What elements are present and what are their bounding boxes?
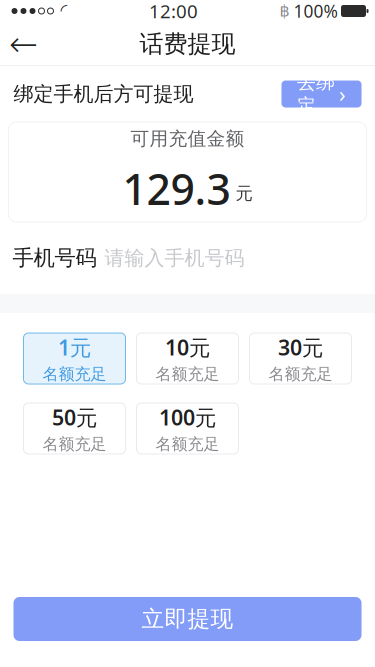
- staticText: 手机号码: [12, 245, 96, 271]
- staticText: 50元: [52, 403, 97, 431]
- staticText: 话费提现: [139, 29, 235, 59]
- button[interactable]: Back: [0, 22, 47, 66]
- staticText: ◜: [60, 0, 67, 20]
- staticText: 名额充足: [155, 434, 219, 454]
- staticText: 绑定手机后方可提现: [13, 82, 193, 106]
- staticText: 可用充值金额: [130, 127, 244, 150]
- button[interactable]: 10元: [136, 333, 238, 384]
- button[interactable]: 立即提现: [13, 597, 361, 641]
- staticText: 100元: [159, 403, 216, 431]
- staticText: 129.3: [122, 160, 230, 217]
- staticText: ฿: [279, 2, 289, 20]
- staticText: 名额充足: [268, 364, 332, 384]
- button[interactable]: 请输入手机号码: [104, 234, 362, 282]
- staticText: 立即提现: [141, 605, 233, 633]
- staticText: ›: [339, 80, 346, 108]
- staticText: 1元: [58, 333, 91, 361]
- button[interactable]: 30元: [249, 333, 351, 384]
- staticText: 名额充足: [42, 364, 106, 384]
- staticText: 100%: [293, 0, 337, 22]
- button[interactable]: 去绑定: [281, 80, 361, 107]
- staticText: 名额充足: [155, 364, 219, 384]
- button[interactable]: 1元: [23, 333, 125, 384]
- staticText: 30元: [278, 333, 323, 361]
- button[interactable]: 100元: [136, 403, 238, 454]
- staticText: 去绑定: [297, 71, 335, 117]
- staticText: ←: [9, 24, 38, 64]
- staticText: 名额充足: [42, 434, 106, 454]
- staticText: 元: [235, 183, 252, 204]
- staticText: 10元: [165, 333, 210, 361]
- staticText: 请输入手机号码: [104, 246, 244, 270]
- staticText: 12:00: [149, 0, 198, 23]
- button[interactable]: 50元: [23, 403, 125, 454]
